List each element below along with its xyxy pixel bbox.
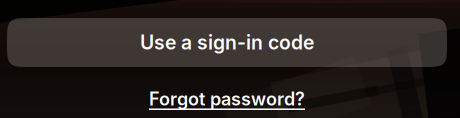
button[interactable]: Forgot password?: [7, 88, 447, 110]
staticText: Forgot password?: [149, 88, 305, 110]
button[interactable]: Use a sign-in code: [7, 18, 447, 67]
staticText: Use a sign-in code: [140, 31, 314, 54]
